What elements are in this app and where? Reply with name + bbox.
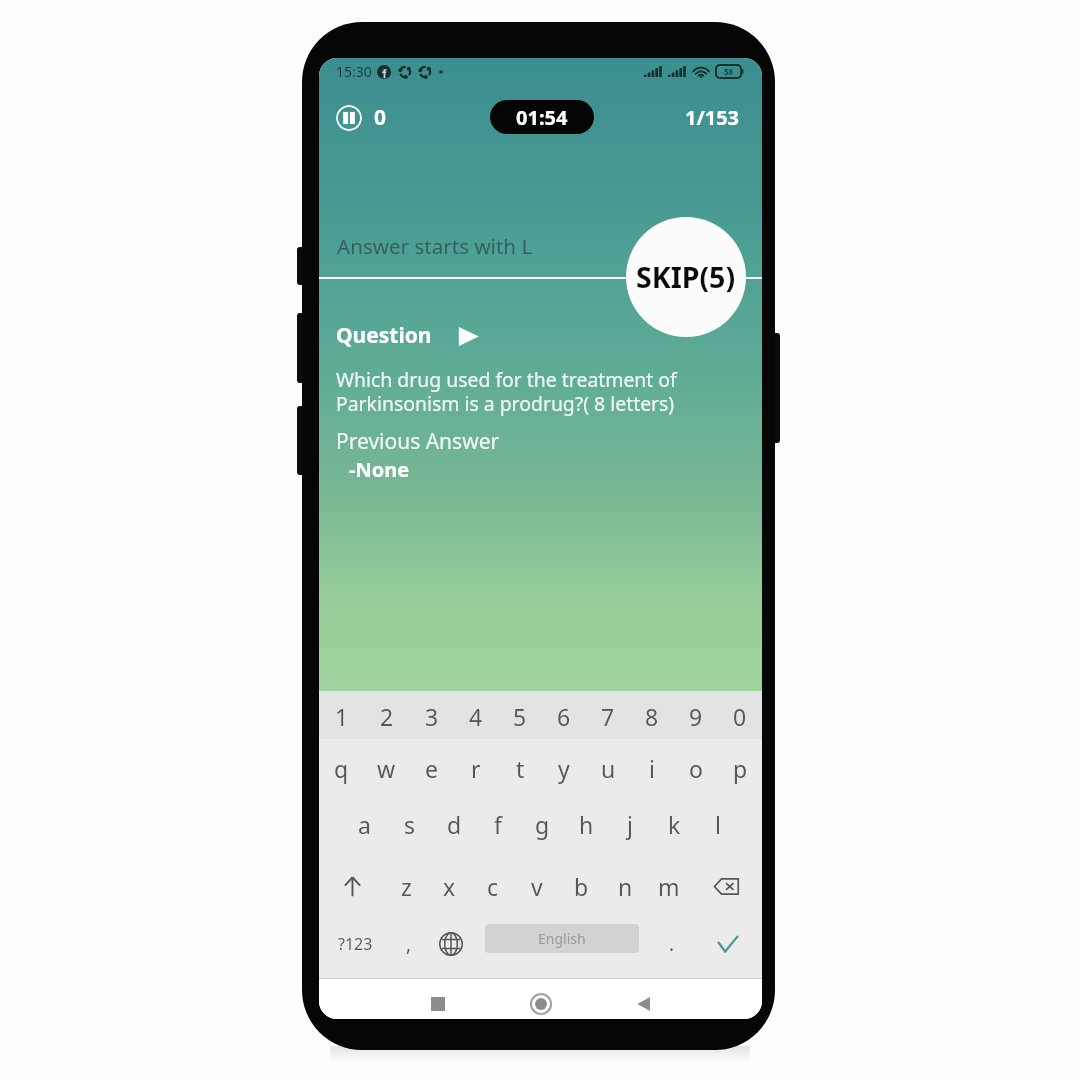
button[interactable]: 6 <box>542 694 586 739</box>
staticText: . <box>669 931 675 957</box>
button[interactable]: Pause <box>336 105 362 131</box>
button[interactable]: 7 <box>586 694 630 739</box>
staticText: Answer starts with L <box>337 232 533 260</box>
button[interactable]: n <box>603 858 647 914</box>
staticText: g <box>535 809 550 840</box>
staticText: l <box>715 809 721 840</box>
staticText: 1/153 <box>685 104 740 131</box>
button[interactable]: 5 <box>498 694 542 739</box>
button[interactable]: v <box>515 858 559 914</box>
staticText: 0 <box>733 701 747 732</box>
button[interactable]: d <box>432 796 476 852</box>
button[interactable]: SKIP(5) <box>626 217 746 337</box>
staticText: ?123 <box>338 933 373 955</box>
button[interactable]: o <box>674 740 718 796</box>
button[interactable]: 9 <box>674 694 718 739</box>
staticText: 1 <box>335 701 349 732</box>
staticText: j <box>627 809 633 840</box>
button[interactable]: j <box>608 796 652 852</box>
staticText: 15:30 <box>336 62 372 81</box>
button[interactable]: Home <box>515 989 567 1019</box>
button[interactable]: Play question <box>456 324 480 348</box>
staticText: English <box>538 929 586 948</box>
button[interactable]: Enter <box>705 915 751 973</box>
staticText: f <box>494 809 502 840</box>
button[interactable]: g <box>520 796 564 852</box>
button[interactable]: 0 <box>718 694 762 739</box>
staticText: i <box>649 753 655 784</box>
staticText: v <box>531 871 543 902</box>
button[interactable]: k <box>652 796 696 852</box>
button[interactable]: 1 <box>319 694 364 739</box>
button[interactable]: b <box>559 858 603 914</box>
button[interactable]: u <box>586 740 630 796</box>
button[interactable]: s <box>387 796 432 852</box>
button[interactable]: h <box>564 796 608 852</box>
staticText: 5 <box>513 701 527 732</box>
button[interactable]: 01:54 <box>490 100 594 134</box>
button[interactable]: f <box>476 796 520 852</box>
staticText: z <box>401 871 412 902</box>
staticText: s <box>404 809 416 840</box>
staticText: SKIP(5) <box>636 258 736 297</box>
staticText: -None <box>349 456 410 483</box>
button[interactable]: 8 <box>630 694 674 739</box>
button[interactable]: , <box>387 915 431 973</box>
button[interactable]: t <box>498 740 542 796</box>
staticText: x <box>443 871 456 902</box>
staticText: 7 <box>601 701 615 732</box>
staticText: Previous Answer <box>336 427 500 456</box>
button[interactable]: e <box>409 740 454 796</box>
button[interactable]: y <box>542 740 586 796</box>
button[interactable]: w <box>364 740 409 796</box>
staticText: 8 <box>645 701 659 732</box>
staticText: Question <box>336 321 432 350</box>
staticText: y <box>558 753 570 784</box>
button[interactable]: q <box>319 740 364 796</box>
button[interactable]: a <box>342 796 387 852</box>
button[interactable]: ?123 <box>329 915 381 973</box>
button[interactable]: English <box>485 924 639 953</box>
staticText: u <box>601 753 616 784</box>
button[interactable]: Backspace <box>691 858 762 914</box>
button[interactable]: l <box>696 796 740 852</box>
staticText: c <box>487 871 499 902</box>
staticText: k <box>668 809 681 840</box>
staticText: d <box>447 809 462 840</box>
button[interactable]: m <box>647 858 691 914</box>
button[interactable]: Change language <box>429 915 473 973</box>
staticText: 4 <box>469 701 483 732</box>
staticText: r <box>471 753 481 784</box>
staticText: b <box>574 871 589 902</box>
staticText: n <box>618 871 633 902</box>
staticText: o <box>689 753 703 784</box>
staticText: 9 <box>689 701 703 732</box>
staticText: q <box>334 753 349 784</box>
button[interactable]: . <box>651 915 693 973</box>
button[interactable]: 3 <box>409 694 454 739</box>
staticText: p <box>733 753 748 784</box>
staticText: t <box>516 753 525 784</box>
button[interactable]: r <box>454 740 498 796</box>
staticText: 2 <box>380 701 394 732</box>
button[interactable]: Recents <box>412 989 464 1019</box>
staticText: a <box>358 809 371 840</box>
button[interactable]: 2 <box>364 694 409 739</box>
staticText: 58 <box>724 66 734 77</box>
button[interactable]: c <box>471 858 515 914</box>
staticText: Which drug used for the treatment of Par… <box>336 366 677 417</box>
staticText: h <box>579 809 594 840</box>
button[interactable]: x <box>428 858 471 914</box>
staticText: 6 <box>557 701 571 732</box>
staticText: , <box>406 931 412 957</box>
staticText: 3 <box>425 701 439 732</box>
button[interactable]: i <box>630 740 674 796</box>
button[interactable]: 4 <box>454 694 498 739</box>
button[interactable]: z <box>385 858 428 914</box>
button[interactable]: p <box>718 740 762 796</box>
staticText: w <box>377 753 396 784</box>
staticText: 0 <box>374 103 387 132</box>
staticText: 01:54 <box>516 104 568 131</box>
button[interactable]: Back <box>618 989 670 1019</box>
button[interactable]: Shift <box>319 858 385 914</box>
